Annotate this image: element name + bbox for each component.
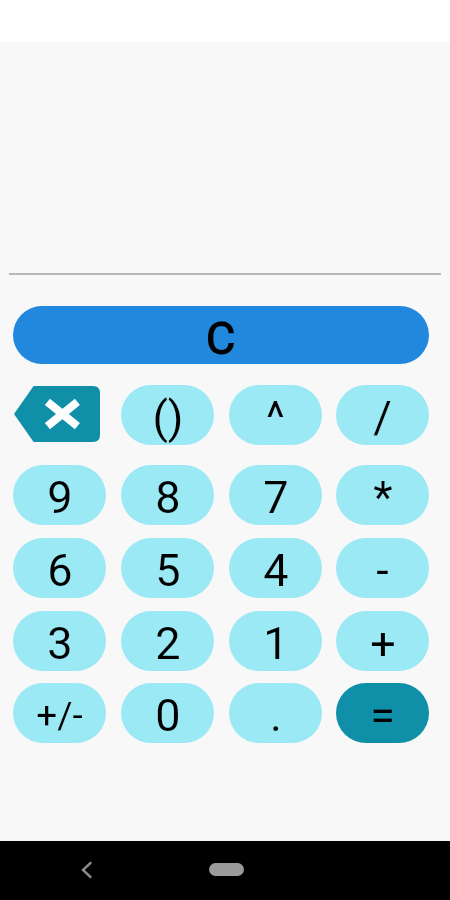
staticText: 0 — [155, 689, 181, 742]
staticText: / — [373, 391, 392, 444]
staticText: 7 — [263, 471, 289, 524]
staticText: () — [152, 391, 184, 444]
staticText: = — [370, 689, 395, 742]
button[interactable]: ^ — [229, 385, 322, 445]
staticText: . — [270, 689, 282, 742]
button[interactable]: . — [229, 683, 322, 743]
button[interactable]: () — [121, 385, 214, 445]
button[interactable]: 9 — [13, 465, 106, 525]
button[interactable]: 4 — [229, 538, 322, 598]
button[interactable]: +/- — [13, 683, 106, 743]
button[interactable]: Backspace — [13, 385, 106, 445]
button[interactable]: / — [336, 385, 429, 445]
staticText: + — [370, 617, 396, 670]
button[interactable]: 6 — [13, 538, 106, 598]
button[interactable]: 1 — [229, 611, 322, 671]
button[interactable]: * — [336, 465, 429, 525]
staticText: - — [376, 544, 389, 597]
staticText: 8 — [155, 471, 181, 524]
staticText: 5 — [155, 544, 181, 597]
staticText: * — [373, 471, 393, 524]
button[interactable]: Back — [69, 852, 105, 888]
button[interactable]: Home — [209, 863, 244, 876]
button[interactable]: 5 — [121, 538, 214, 598]
button[interactable]: 2 — [121, 611, 214, 671]
staticText: 4 — [263, 544, 289, 597]
staticText: 1 — [263, 617, 289, 670]
button[interactable]: + — [336, 611, 429, 671]
staticText: 2 — [155, 617, 181, 670]
staticText: ^ — [266, 391, 285, 444]
button[interactable]: 0 — [121, 683, 214, 743]
staticText: C — [206, 312, 236, 364]
staticText: 3 — [47, 617, 73, 670]
button[interactable]: 7 — [229, 465, 322, 525]
button[interactable]: - — [336, 538, 429, 598]
staticText: +/- — [36, 694, 83, 737]
button[interactable]: 3 — [13, 611, 106, 671]
staticText: 9 — [47, 471, 73, 524]
button[interactable]: 8 — [121, 465, 214, 525]
button[interactable]: = — [336, 683, 429, 743]
staticText: 6 — [47, 544, 73, 597]
button[interactable]: C — [13, 306, 429, 364]
